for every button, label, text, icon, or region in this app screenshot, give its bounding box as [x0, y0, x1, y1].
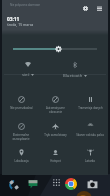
button[interactable]: Apps — [50, 176, 62, 188]
button[interactable]: Automatyczne obracanie — [38, 93, 72, 119]
staticText: Hotspot — [50, 159, 61, 163]
staticText: sieć — [22, 72, 30, 78]
button[interactable]: Nie przeszkadzać — [4, 93, 38, 119]
staticText: Nie połączono alarmowe — [10, 3, 41, 7]
button[interactable]: Messages — [27, 178, 39, 190]
staticText: Transmisja danych — [78, 106, 103, 110]
button[interactable]: Edit order — [94, 3, 104, 13]
button[interactable]: Settings — [80, 3, 90, 13]
button[interactable]: Skaner odcisku palca — [73, 120, 107, 146]
button[interactable]: Camera — [86, 178, 98, 190]
staticText: Tryb samolotowy — [44, 133, 67, 137]
staticText: Nie przeszkadzać — [10, 106, 33, 110]
staticText: Bluetooth — [63, 73, 83, 79]
staticText: Latarka — [85, 159, 95, 163]
button[interactable]: Tryb samolotowy — [38, 120, 72, 146]
staticText: Ekstremalne oszczędzanie — [12, 133, 30, 141]
staticText: Automatyczne obracanie — [46, 106, 65, 114]
staticText: 03:11 — [7, 16, 20, 23]
button[interactable]: Hotspot — [38, 146, 72, 172]
button[interactable]: Phone — [8, 179, 19, 190]
button[interactable]: Bluetooth — [59, 62, 91, 84]
button[interactable]: Transmisja danych — [73, 93, 107, 119]
button[interactable]: Lokalizacja — [4, 146, 38, 172]
button[interactable]: Ekstremalne oszczędzanie — [4, 120, 38, 146]
button[interactable]: Chrome — [65, 178, 77, 190]
button[interactable]: Latarka — [73, 146, 107, 172]
staticText: Lokalizacja — [14, 159, 29, 163]
staticText: Skaner odcisku palca — [76, 133, 104, 137]
button[interactable]: sieć — [12, 62, 44, 84]
staticText: środa, 15 marca — [7, 22, 34, 27]
